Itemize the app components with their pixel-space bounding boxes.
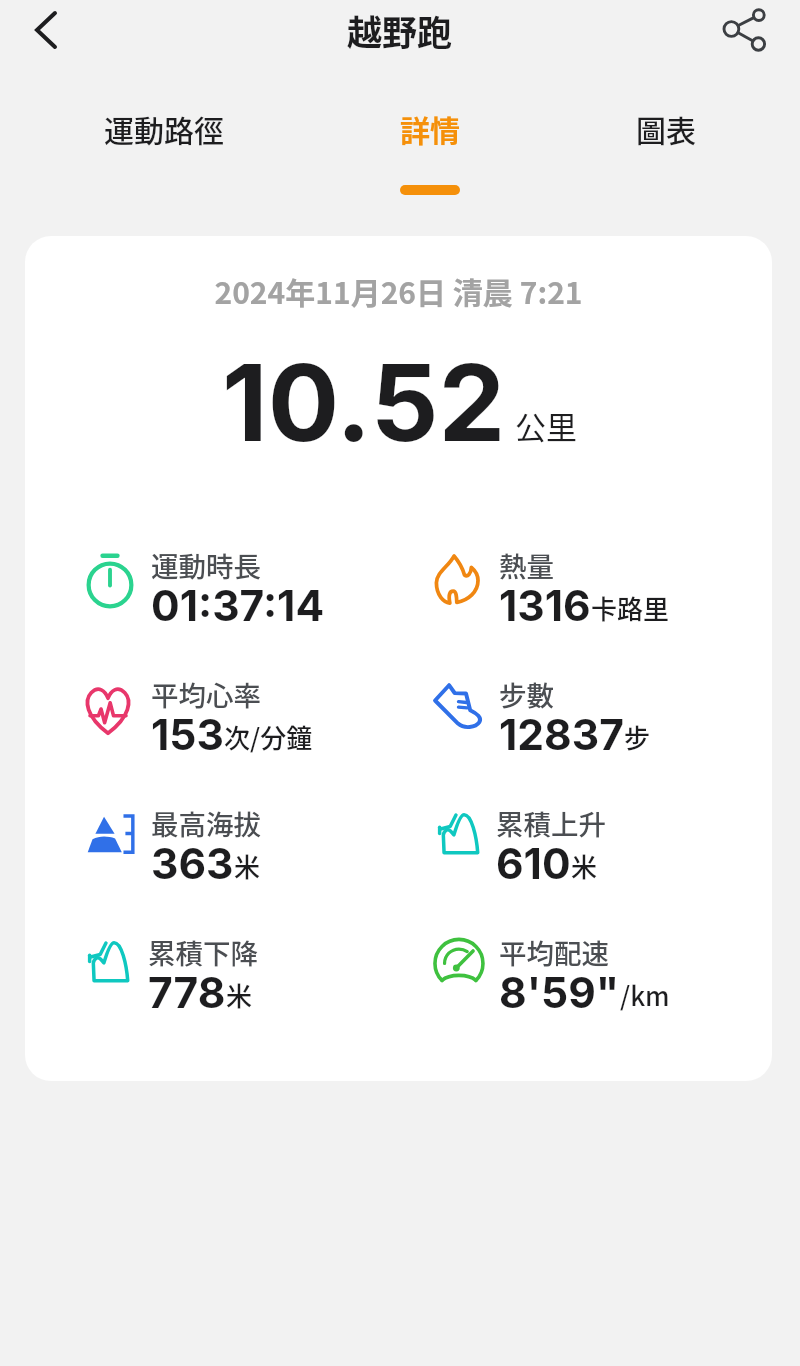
staticText: 平均配速 xyxy=(499,932,609,972)
staticText: 步 xyxy=(624,718,651,756)
staticText: 2024年11月26日 清晨 7:21 xyxy=(214,269,583,312)
staticText: 公里 xyxy=(515,403,577,448)
staticText: 熱量 xyxy=(499,545,554,585)
staticText: 最高海拔 xyxy=(151,803,261,843)
button[interactable]: Back xyxy=(17,1,75,59)
staticText: 米 xyxy=(234,847,261,885)
staticText: /km xyxy=(620,976,670,1014)
staticText: 778 xyxy=(148,967,226,1018)
staticText: 8'59" xyxy=(499,967,620,1018)
staticText: 363 xyxy=(151,838,234,889)
button[interactable]: Share xyxy=(715,1,773,59)
staticText: 運動路徑 xyxy=(104,107,224,150)
staticText: 越野跑 xyxy=(347,5,453,56)
staticText: 01:37:14 xyxy=(151,580,325,631)
staticText: 153 xyxy=(151,709,224,760)
button[interactable]: 圖表 xyxy=(636,107,696,201)
staticText: 12837 xyxy=(499,709,624,760)
staticText: 運動時長 xyxy=(151,545,261,585)
staticText: 累積上升 xyxy=(496,803,606,843)
staticText: 1316 xyxy=(499,580,591,631)
staticText: 米 xyxy=(226,976,253,1014)
button[interactable]: 運動路徑 xyxy=(104,107,224,201)
staticText: 10.52 xyxy=(222,338,506,466)
staticText: 圖表 xyxy=(636,107,696,150)
staticText: 平均心率 xyxy=(151,674,261,714)
staticText: 米 xyxy=(571,847,598,885)
staticText: 步數 xyxy=(499,674,554,714)
staticText: 累積下降 xyxy=(148,932,258,972)
staticText: 詳情 xyxy=(400,107,460,150)
button[interactable]: 詳情 xyxy=(400,107,460,201)
staticText: 卡路里 xyxy=(591,589,670,627)
staticText: 次/分鐘 xyxy=(224,718,313,756)
staticText: 610 xyxy=(496,838,571,889)
